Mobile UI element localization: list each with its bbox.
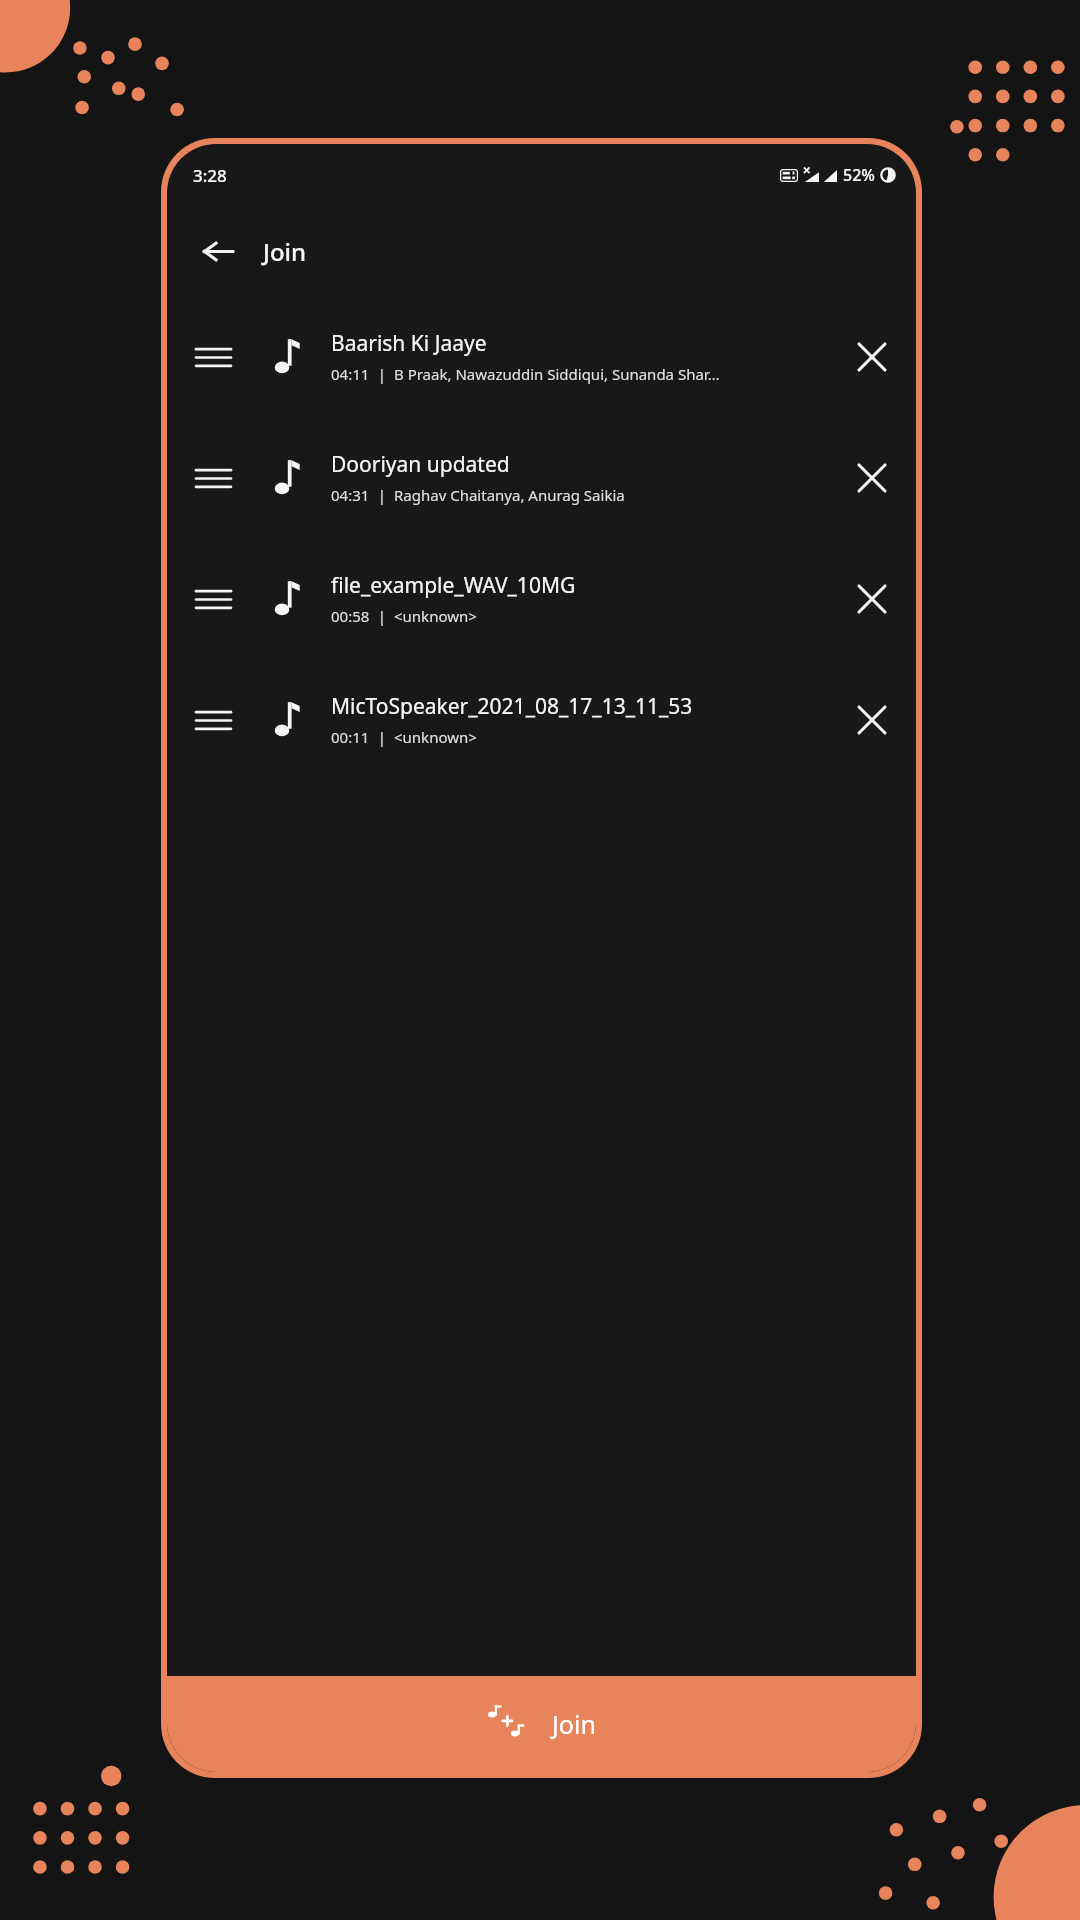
staticText: file_example_WAV_10MG (331, 571, 576, 600)
staticText: 04:31 (331, 485, 370, 505)
staticText: 3:28 (193, 164, 227, 187)
staticText: Baarish Ki Jaaye (331, 329, 487, 358)
staticText: Raghav Chaitanya, Anurag Saikia (394, 485, 625, 505)
button[interactable]: Remove (842, 448, 902, 508)
staticText: | (370, 364, 394, 384)
button[interactable]: Reorder (185, 450, 241, 506)
button[interactable]: Back (191, 224, 245, 278)
button[interactable]: Reorder (185, 571, 241, 627)
staticText: MicToSpeaker_2021_08_17_13_11_53 (331, 692, 693, 721)
button[interactable]: Reorder (185, 329, 241, 385)
staticText: B Praak, Nawazuddin Siddiqui, Sunanda Sh… (394, 364, 720, 384)
staticText: Join (552, 1707, 596, 1741)
button[interactable]: Reorder (167, 538, 916, 659)
staticText: <unknown> (394, 606, 477, 626)
staticText: 52% (843, 164, 875, 186)
button[interactable]: Reorder (167, 417, 916, 538)
staticText: Join (263, 235, 307, 268)
button[interactable]: Reorder (185, 692, 241, 748)
staticText: | (370, 727, 394, 747)
staticText: <unknown> (394, 727, 477, 747)
staticText: 00:11 (331, 727, 370, 747)
button[interactable]: Reorder (167, 296, 916, 417)
button[interactable]: Remove (842, 327, 902, 387)
staticText: | (370, 485, 394, 505)
button[interactable]: Reorder (167, 659, 916, 780)
staticText: 00:58 (331, 606, 370, 626)
button[interactable]: Remove (842, 569, 902, 629)
button[interactable]: Join (167, 1676, 916, 1772)
button[interactable]: Remove (842, 690, 902, 750)
staticText: 04:11 (331, 364, 370, 384)
staticText: Dooriyan updated (331, 450, 510, 479)
staticText: | (370, 606, 394, 626)
